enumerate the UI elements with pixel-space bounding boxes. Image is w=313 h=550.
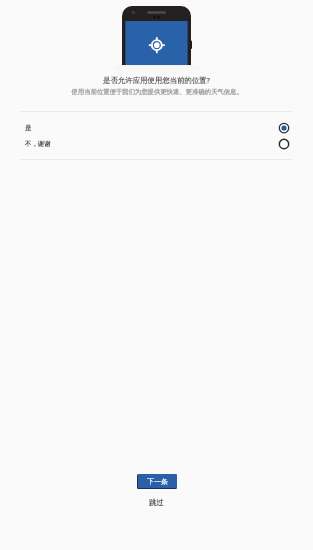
staticText: 下一条 <box>147 477 168 486</box>
staticText: 不，谢谢 <box>25 140 51 148</box>
staticText: 使用当前位置便于我们为您提供更快速、更准确的天气信息。 <box>71 88 243 96</box>
button[interactable]: 跳过 <box>143 496 170 509</box>
staticText: 跳过 <box>149 498 164 507</box>
staticText: 是否允许应用使用您当前的位置? <box>103 75 210 85</box>
staticText: 是 <box>25 124 32 132</box>
button[interactable]: 下一条 <box>137 474 177 489</box>
button[interactable]: 不，谢谢 <box>0 136 313 152</box>
button[interactable]: 是 <box>0 120 313 136</box>
